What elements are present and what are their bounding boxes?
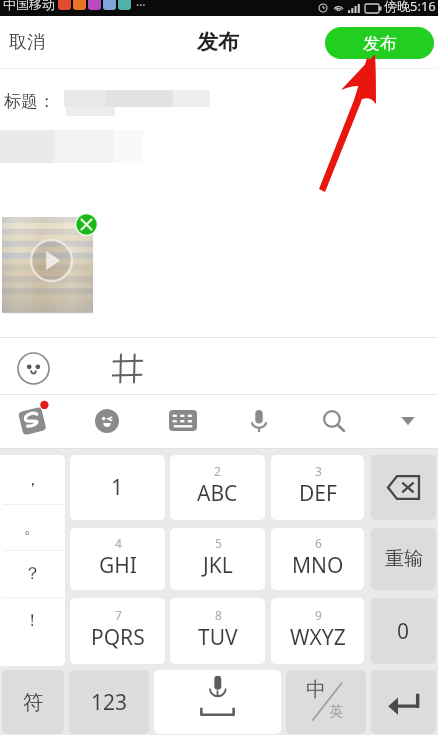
- button[interactable]: 7: [70, 598, 165, 664]
- button[interactable]: Topic: [110, 351, 146, 385]
- staticText: ！: [24, 610, 41, 631]
- staticText: 1: [111, 473, 124, 502]
- staticText: 0: [397, 617, 410, 646]
- staticText: 4: [115, 535, 122, 551]
- staticText: 8: [215, 607, 222, 623]
- staticText: GHI: [99, 551, 137, 580]
- button[interactable]: ，: [0, 455, 65, 504]
- staticText: 发布: [197, 29, 239, 55]
- staticText: 中国移动: [3, 0, 55, 12]
- button[interactable]: Emoji panel: [95, 409, 119, 433]
- button[interactable]: Collapse keyboard: [396, 410, 420, 434]
- button[interactable]: 发布: [325, 27, 434, 59]
- staticText: 2: [214, 463, 221, 479]
- button[interactable]: 1: [70, 455, 165, 520]
- staticText: MNO: [292, 551, 344, 580]
- button[interactable]: Backspace: [371, 455, 436, 520]
- button[interactable]: 2: [170, 455, 265, 520]
- button[interactable]: ？: [0, 550, 65, 597]
- button[interactable]: Enter: [371, 670, 436, 734]
- button[interactable]: 4: [70, 528, 165, 590]
- button[interactable]: 取消: [0, 21, 59, 64]
- staticText: JKL: [203, 551, 233, 580]
- button[interactable]: 符: [2, 670, 64, 734]
- staticText: 3: [315, 463, 322, 479]
- staticText: 中: [306, 677, 326, 702]
- button[interactable]: 9: [271, 598, 364, 664]
- staticText: ？: [24, 563, 41, 584]
- button[interactable]: Space: [154, 670, 281, 734]
- staticText: DEF: [299, 479, 337, 508]
- button[interactable]: 。: [0, 504, 65, 550]
- staticText: 标题：: [4, 91, 55, 112]
- button[interactable]: 3: [271, 455, 364, 520]
- button[interactable]: Chinese English toggle: [286, 670, 366, 734]
- staticText: 符: [23, 690, 43, 715]
- button[interactable]: Emoji: [17, 352, 50, 385]
- staticText: 7: [115, 607, 122, 623]
- staticText: ，: [24, 469, 41, 490]
- button[interactable]: Search: [321, 408, 347, 434]
- staticText: 取消: [9, 31, 45, 54]
- staticText: 9: [315, 607, 322, 623]
- staticText: 傍晚5:16: [384, 0, 436, 13]
- staticText: WXYZ: [290, 623, 346, 652]
- staticText: 重输: [385, 547, 423, 571]
- button[interactable]: Voice input: [248, 408, 270, 434]
- button[interactable]: Keyboard: [169, 410, 197, 431]
- staticText: ABC: [197, 479, 238, 508]
- staticText: 。: [24, 517, 41, 538]
- button[interactable]: 重输: [371, 528, 436, 590]
- button[interactable]: ！: [0, 597, 65, 644]
- button[interactable]: 8: [170, 598, 265, 664]
- button[interactable]: 6: [271, 528, 364, 590]
- staticText: …: [136, 0, 146, 9]
- button[interactable]: 5: [170, 528, 265, 590]
- staticText: 英: [329, 703, 343, 721]
- staticText: 123: [91, 688, 128, 717]
- staticText: 5: [215, 535, 222, 551]
- staticText: 发布: [363, 33, 397, 54]
- button[interactable]: 0: [371, 598, 436, 664]
- staticText: TUV: [198, 623, 238, 652]
- button[interactable]: Sogou input: [14, 400, 52, 438]
- staticText: 6: [315, 535, 322, 551]
- button[interactable]: 123: [69, 670, 149, 734]
- button[interactable]: Remove video: [74, 212, 99, 237]
- staticText: PQRS: [91, 623, 145, 652]
